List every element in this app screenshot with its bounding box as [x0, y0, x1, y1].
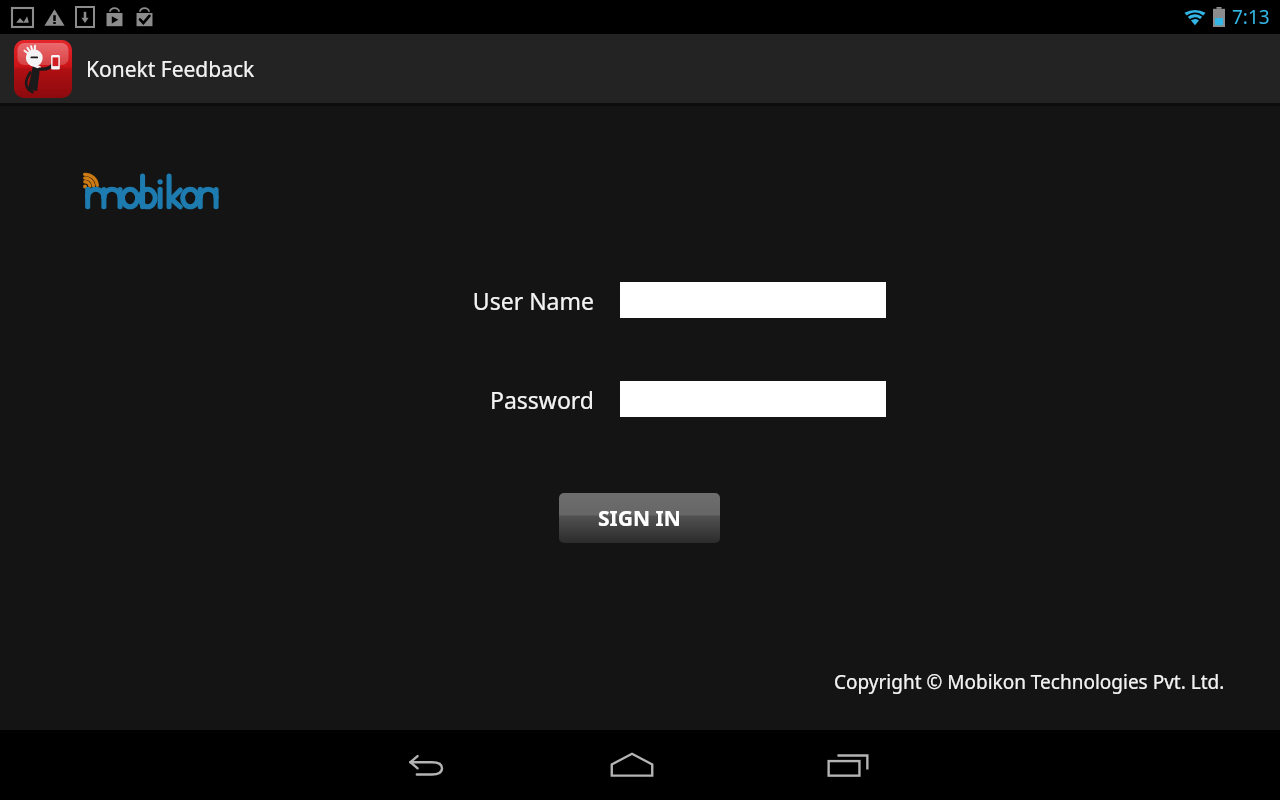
button[interactable]: SIGN IN — [559, 493, 720, 543]
other: mobikon logo — [78, 169, 250, 213]
staticText: SIGN IN — [598, 504, 681, 533]
staticText: Password — [0, 384, 594, 415]
staticText: Konekt Feedback — [86, 55, 255, 84]
other: App icon — [14, 40, 72, 98]
button[interactable]: Back — [324, 730, 524, 800]
button[interactable]: Home — [524, 730, 740, 800]
button[interactable]: App icon — [14, 40, 255, 98]
button[interactable]: Recent apps — [740, 730, 956, 800]
staticText: 7:13 — [1232, 4, 1270, 30]
staticText: Copyright © Mobikon Technologies Pvt. Lt… — [834, 669, 1225, 695]
staticText: User Name — [0, 285, 594, 316]
